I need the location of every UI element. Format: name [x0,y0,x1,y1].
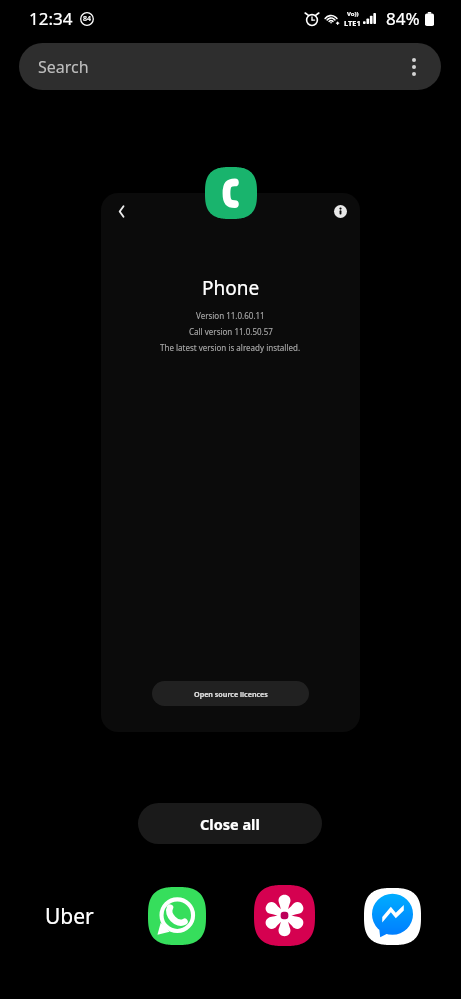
button[interactable]: Open source licences [152,681,309,706]
staticText: 12:34 [29,7,73,30]
staticText: 84% [386,7,420,30]
staticText: Version 11.0.60.11 [196,310,265,321]
staticText: Uber [45,902,94,931]
staticText: LTE1 [344,18,361,28]
button[interactable]: Back [101,193,360,732]
button[interactable]: Search [19,43,441,90]
button[interactable]: Back [107,197,135,225]
staticText: Vo)) [347,10,359,18]
button[interactable]: Phone app icon [205,167,257,219]
staticText: Search [38,56,89,78]
button[interactable]: WhatsApp [148,887,206,945]
staticText: 84 [83,14,92,24]
button[interactable]: Close all [138,803,322,844]
button[interactable]: Uber [40,887,98,945]
button[interactable]: Messenger [364,888,421,945]
staticText: Phone [202,275,260,301]
staticText: Close all [200,814,260,834]
staticText: Call version 11.0.50.57 [189,326,273,337]
button[interactable]: App info [327,198,353,224]
button[interactable]: More options [397,50,431,84]
button[interactable]: Gallery [254,885,315,946]
staticText: Open source licences [194,689,268,699]
staticText: The latest version is already installed. [160,342,301,353]
